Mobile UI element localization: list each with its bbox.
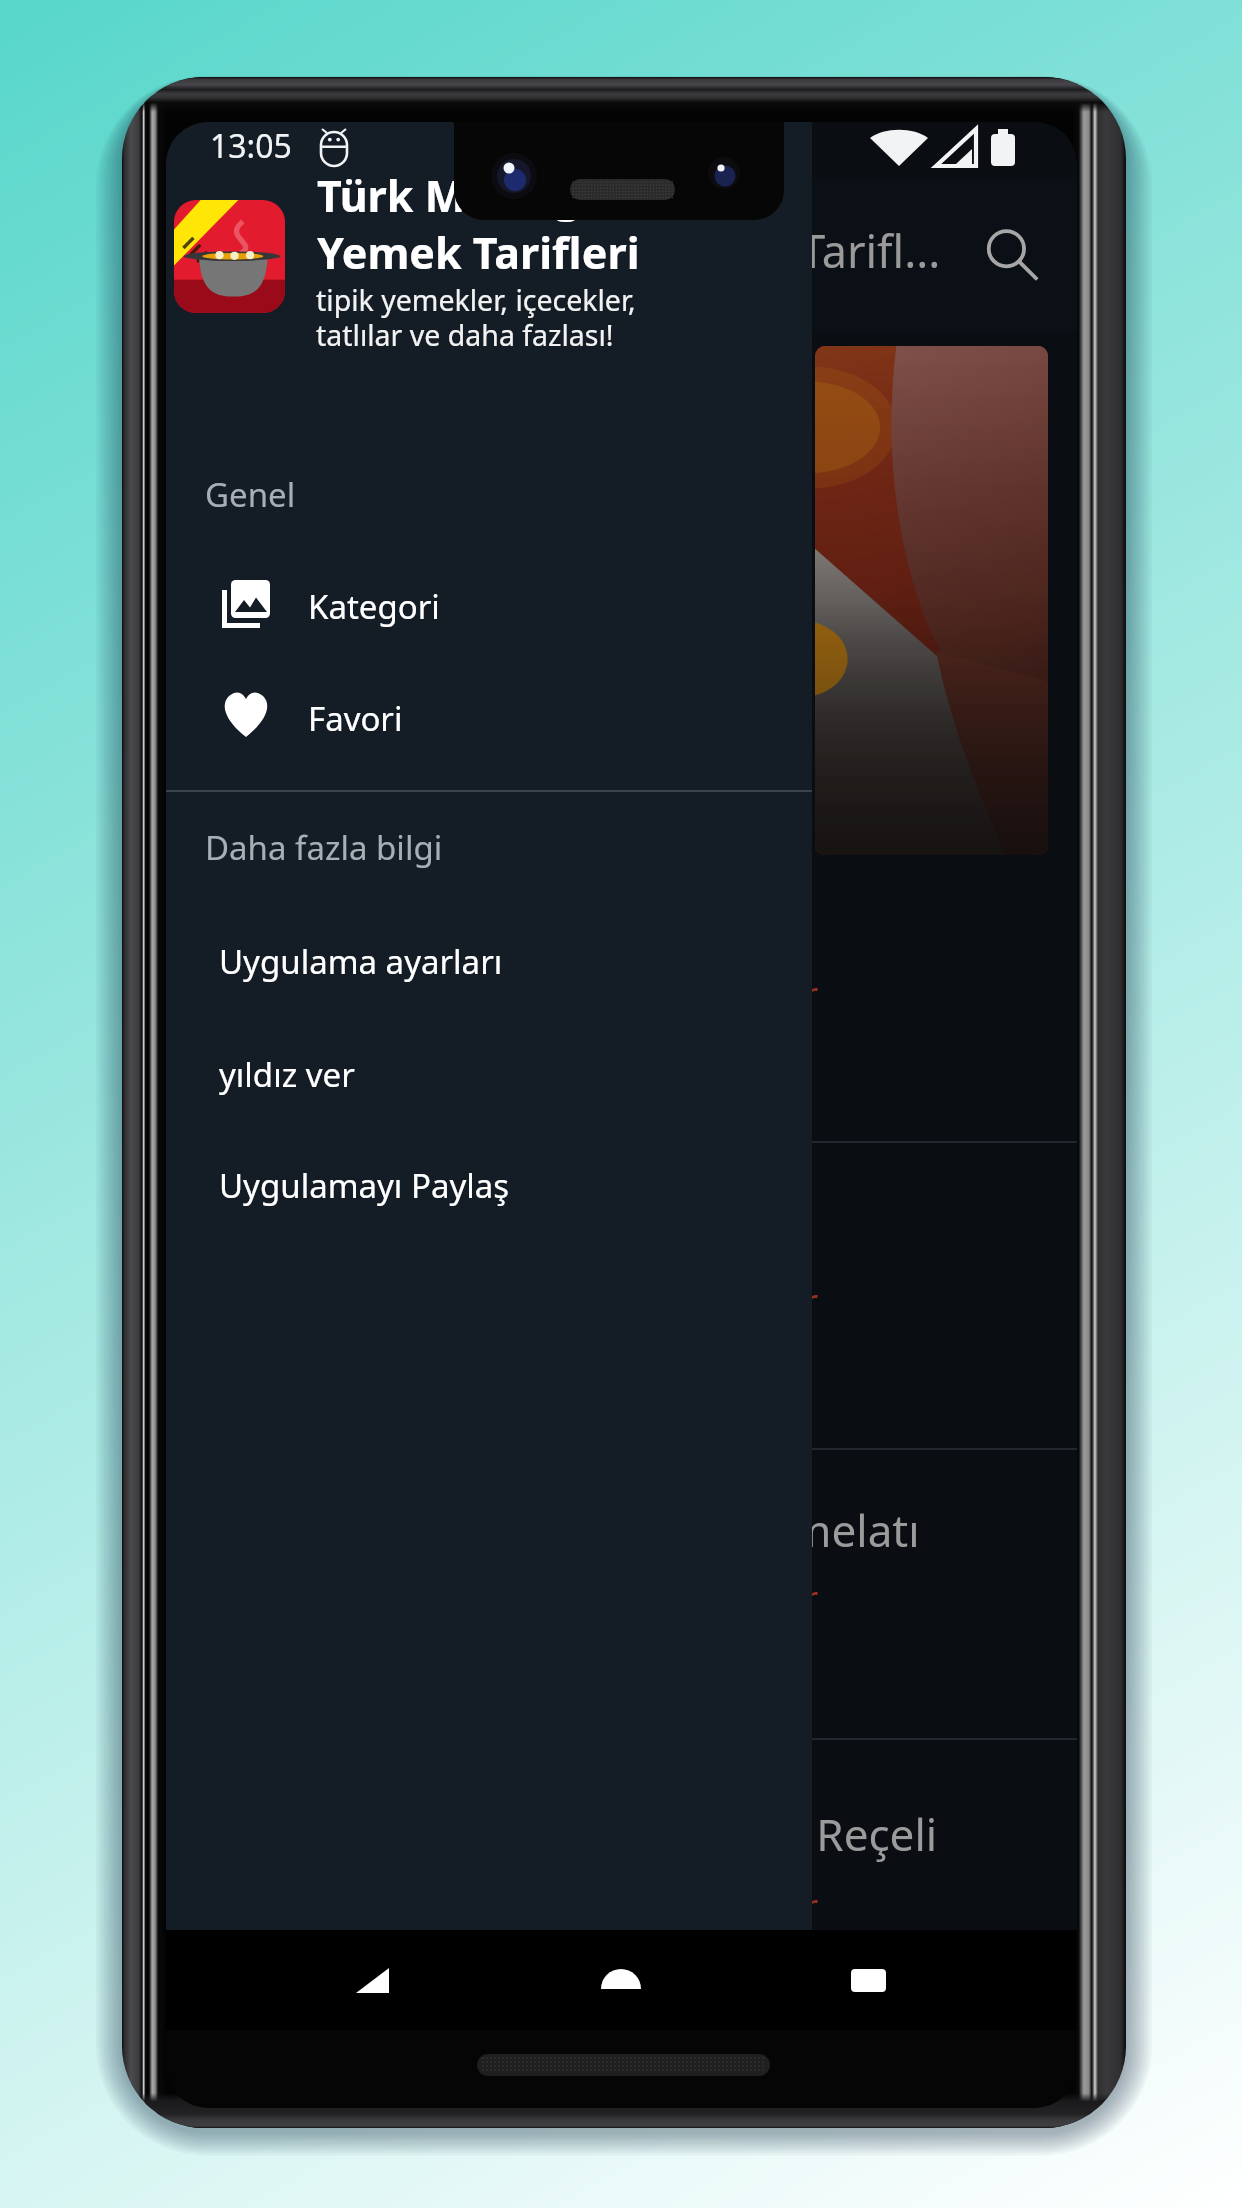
button[interactable]: Search [967,211,1057,301]
staticText: Tarifi Gör [663,1277,819,1326]
staticText: Kayısı Marmelatı [578,1500,920,1560]
button[interactable]: Uygulamayı Paylaş [166,1128,812,1240]
staticText: Uygulama ayarları [219,939,503,984]
staticText: Tarifi Gör [663,1882,819,1931]
button[interactable]: yıldız ver [166,1017,812,1129]
staticText: Uygulamayı Paylaş [219,1163,510,1208]
staticText: Türk Mutfağı Yemek Tarifl... [367,220,941,281]
staticText: Yemek Tarifleri [317,223,640,282]
staticText: Tarifi Gör [663,970,819,1019]
staticText: tatlılar ve daha fazlası! [316,316,614,355]
staticText: Tarifi Gör [663,1574,819,1623]
staticText: tipik yemekler, içecekler, [316,281,636,320]
button[interactable]: Favori [166,664,812,776]
staticText: Kategori [308,584,440,629]
button[interactable]: Kategori [166,552,812,664]
button[interactable]: Back [316,1938,428,2022]
button[interactable]: Uygulama ayarları [166,904,812,1016]
staticText: 13:05 [210,124,292,168]
staticText: Çilek Reçeli [706,1804,938,1864]
staticText: Daha fazla bilgi [205,825,443,870]
staticText: Favori [308,696,403,741]
button[interactable]: Home [565,1938,677,2022]
staticText: yıldız ver [219,1052,355,1097]
button[interactable]: Recent apps [812,1938,924,2022]
staticText: Türk Mutfağı [317,166,595,225]
staticText: Genel [205,472,296,517]
